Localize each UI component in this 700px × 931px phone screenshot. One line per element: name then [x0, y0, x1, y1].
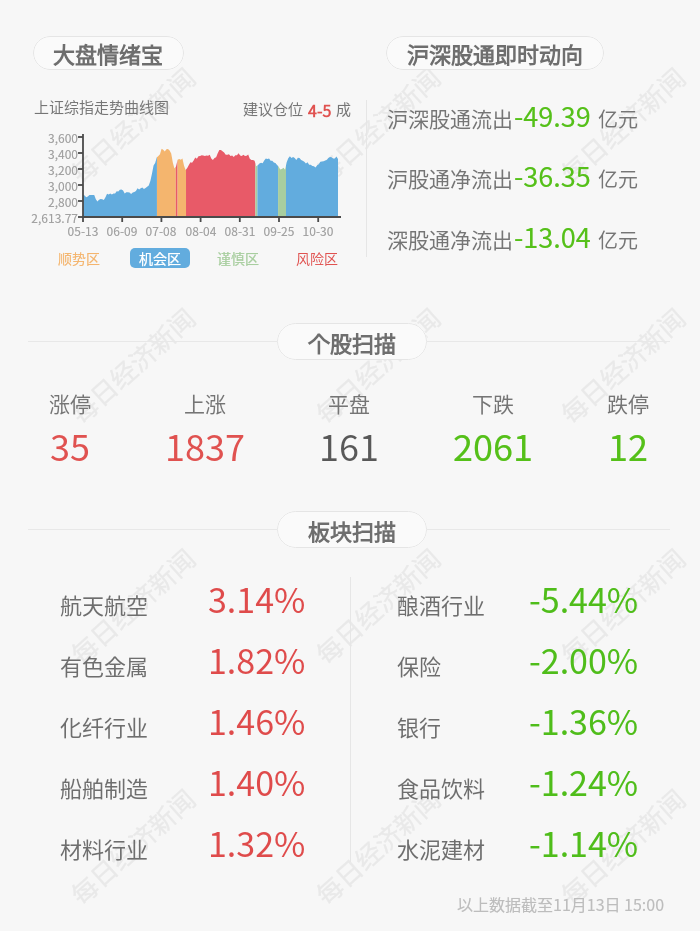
- staticText: 12: [566, 419, 690, 471]
- staticText: 大盘情绪宝: [53, 37, 164, 69]
- button[interactable]: 食品饮料: [389, 765, 494, 809]
- staticText: 上涨: [143, 388, 267, 418]
- staticText: 酿酒行业: [397, 588, 486, 620]
- staticText: 沪深股通即时动向: [407, 37, 584, 69]
- staticText: 上证综指走势曲线图: [34, 96, 170, 118]
- staticText: 机会区: [139, 248, 181, 268]
- staticText: 化纤行业: [60, 710, 149, 742]
- staticText: 食品饮料: [397, 771, 486, 803]
- staticText: 亿元: [598, 225, 638, 254]
- staticText: 涨停: [8, 388, 132, 418]
- button[interactable]: 板块扫描: [277, 511, 427, 548]
- staticText: 06-09: [92, 222, 152, 239]
- button[interactable]: 涨停: [8, 388, 132, 471]
- staticText: 风险区: [296, 248, 338, 268]
- staticText: 4-5: [308, 98, 332, 121]
- button[interactable]: 航天航空: [52, 582, 157, 626]
- staticText: 2,800: [0, 193, 78, 210]
- button[interactable]: 船舶制造: [52, 765, 157, 809]
- staticText: 1.40%: [208, 757, 306, 806]
- staticText: 08-04: [171, 222, 231, 239]
- button[interactable]: 化纤行业: [52, 704, 157, 748]
- button[interactable]: 水泥建材: [389, 826, 494, 870]
- button[interactable]: 沪深股通流出: [379, 86, 646, 141]
- staticText: -5.44%: [529, 574, 639, 623]
- staticText: 航天航空: [60, 588, 149, 620]
- button[interactable]: 平盘: [287, 388, 411, 471]
- staticText: 保险: [397, 649, 442, 681]
- button[interactable]: 银行: [389, 704, 450, 748]
- staticText: 10-30: [288, 222, 348, 239]
- staticText: 2,613.77: [0, 209, 78, 226]
- staticText: -49.39: [514, 96, 591, 135]
- staticText: 沪股通净流出: [387, 163, 513, 193]
- staticText: 1.46%: [208, 696, 306, 745]
- staticText: 161: [287, 419, 411, 471]
- button[interactable]: 保险: [389, 643, 450, 687]
- staticText: 水泥建材: [397, 832, 486, 864]
- staticText: 3.14%: [208, 574, 306, 623]
- staticText: 建议仓位: [243, 98, 304, 120]
- staticText: 3,400: [0, 145, 78, 162]
- button[interactable]: 以上数据截至11月13日 15:00: [449, 886, 673, 921]
- staticText: 平盘: [287, 388, 411, 418]
- staticText: 07-08: [131, 222, 191, 239]
- button[interactable]: 个股扫描: [277, 323, 427, 360]
- staticText: 3,000: [0, 177, 78, 194]
- button[interactable]: 跌停: [566, 388, 690, 471]
- staticText: 下跌: [431, 388, 555, 418]
- staticText: 船舶制造: [60, 771, 149, 803]
- button[interactable]: 酿酒行业: [389, 582, 494, 626]
- staticText: -1.14%: [529, 818, 639, 867]
- staticText: 3,200: [0, 161, 78, 178]
- button[interactable]: 材料行业: [52, 826, 157, 870]
- staticText: 35: [8, 419, 132, 471]
- staticText: 08-31: [210, 222, 270, 239]
- staticText: -2.00%: [529, 635, 639, 684]
- staticText: 3,600: [0, 129, 78, 146]
- staticText: 板块扫描: [308, 514, 397, 546]
- staticText: 成: [336, 98, 352, 120]
- button[interactable]: 下跌: [431, 388, 555, 471]
- staticText: 材料行业: [60, 832, 149, 864]
- staticText: -1.24%: [529, 757, 639, 806]
- button[interactable]: 沪深股通即时动向: [386, 36, 604, 70]
- staticText: 亿元: [598, 104, 638, 133]
- staticText: 1.32%: [208, 818, 306, 867]
- staticText: -13.04: [514, 217, 591, 256]
- staticText: -36.35: [514, 156, 591, 195]
- staticText: 2061: [431, 419, 555, 471]
- staticText: 1.82%: [208, 635, 306, 684]
- button[interactable]: 大盘情绪宝: [33, 36, 184, 70]
- button[interactable]: 机会区: [130, 248, 190, 268]
- staticText: 银行: [397, 710, 442, 742]
- staticText: 深股通净流出: [387, 224, 513, 254]
- staticText: 谨慎区: [217, 248, 259, 268]
- staticText: 顺势区: [58, 248, 100, 268]
- staticText: 沪深股通流出: [387, 103, 513, 133]
- staticText: 1837: [143, 419, 267, 471]
- button[interactable]: 有色金属: [52, 643, 157, 687]
- staticText: 09-25: [249, 222, 309, 239]
- button[interactable]: 沪股通净流出: [379, 146, 646, 201]
- staticText: 有色金属: [60, 649, 149, 681]
- staticText: -1.36%: [529, 696, 639, 745]
- staticText: 跌停: [566, 388, 690, 418]
- staticText: 亿元: [598, 164, 638, 193]
- staticText: 以上数据截至11月13日 15:00: [457, 892, 665, 915]
- staticText: 05-13: [53, 222, 113, 239]
- button[interactable]: 深股通净流出: [379, 207, 646, 262]
- button[interactable]: 上涨: [143, 388, 267, 471]
- staticText: 个股扫描: [308, 326, 397, 358]
